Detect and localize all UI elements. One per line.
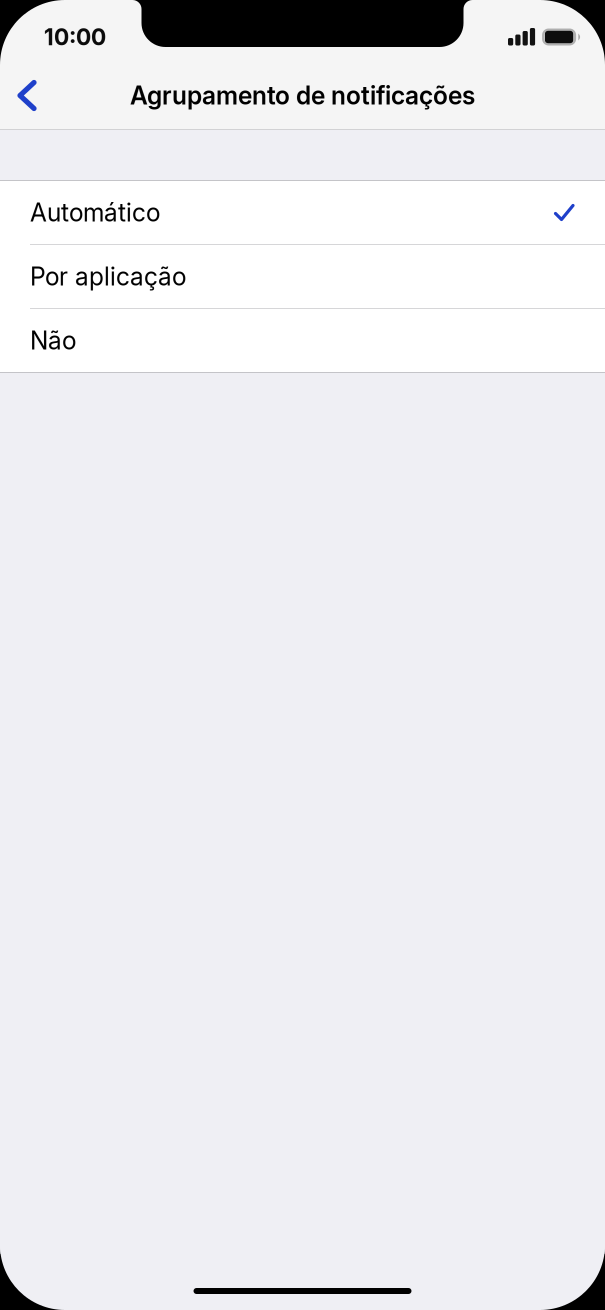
button[interactable]: Back	[0, 64, 54, 126]
staticText: Não	[30, 326, 76, 355]
button[interactable]: Automático	[0, 181, 605, 245]
staticText: Agrupamento de notificações	[130, 81, 475, 110]
staticText: Por aplicação	[30, 262, 186, 291]
navigationBar: Agrupamento de notificações	[0, 62, 605, 129]
staticText: 10:00	[44, 23, 106, 51]
staticText: Automático	[30, 198, 160, 227]
button[interactable]: Por aplicação	[0, 245, 605, 309]
button[interactable]: Não	[0, 309, 605, 372]
